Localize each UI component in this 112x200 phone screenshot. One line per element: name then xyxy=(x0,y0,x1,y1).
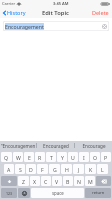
staticText: K xyxy=(89,166,93,173)
staticText: S xyxy=(19,166,22,173)
staticText: 3:45 AM xyxy=(53,1,69,6)
staticText: Delete xyxy=(92,9,109,16)
button[interactable]: 123 xyxy=(1,188,17,198)
button[interactable]: E xyxy=(24,152,34,162)
button[interactable]: O xyxy=(90,152,100,162)
button[interactable]: G xyxy=(49,164,60,174)
button[interactable]: Backspace xyxy=(96,176,111,186)
button[interactable]: space xyxy=(31,188,84,198)
staticText: M xyxy=(88,178,93,185)
button[interactable]: Delete xyxy=(91,8,110,17)
button[interactable]: J xyxy=(73,164,84,174)
staticText: space xyxy=(52,190,64,196)
button[interactable]: Encouragement xyxy=(3,21,109,31)
staticText: W xyxy=(16,154,21,161)
staticText: Z xyxy=(22,178,25,185)
button[interactable]: N xyxy=(74,176,84,186)
button[interactable]: U xyxy=(68,152,78,162)
staticText: Y xyxy=(61,154,64,161)
button[interactable]: R xyxy=(35,152,45,162)
button[interactable]: C xyxy=(41,176,51,186)
button[interactable]: Clear text xyxy=(102,24,107,29)
staticText: H xyxy=(65,166,69,173)
button[interactable]: "Encouragement" xyxy=(0,141,36,150)
staticText: C xyxy=(44,178,48,185)
button[interactable]: S xyxy=(15,164,25,174)
staticText: "Encouragement" xyxy=(0,143,36,149)
staticText: U xyxy=(71,154,75,161)
button[interactable]: B xyxy=(63,176,73,186)
staticText: 123 xyxy=(6,191,13,196)
staticText: E xyxy=(28,154,31,161)
staticText: I xyxy=(83,154,85,161)
staticText: Edit Topic xyxy=(42,9,70,17)
button[interactable]: Encouraged xyxy=(37,141,74,150)
staticText: X xyxy=(33,178,37,185)
staticText: J xyxy=(78,166,80,173)
staticText: Encouragement xyxy=(5,23,44,30)
staticText: Encourage xyxy=(82,143,106,149)
button[interactable]: A xyxy=(4,164,14,174)
staticText: A xyxy=(7,166,11,173)
button[interactable]: M xyxy=(85,176,95,186)
button[interactable]: return xyxy=(85,188,111,198)
staticText: O xyxy=(93,154,98,161)
button[interactable]: V xyxy=(52,176,62,186)
staticText: R xyxy=(38,154,42,161)
staticText: History xyxy=(7,9,26,16)
button[interactable]: T xyxy=(46,152,56,162)
button[interactable]: L xyxy=(97,164,108,174)
staticText: T xyxy=(50,154,53,161)
staticText: Encouraged xyxy=(43,143,69,149)
button[interactable]: X xyxy=(30,176,40,186)
button[interactable]: P xyxy=(101,152,111,162)
button[interactable]: Shift xyxy=(1,176,17,186)
staticText: D xyxy=(29,166,33,173)
button[interactable]: Y xyxy=(57,152,67,162)
button[interactable]: I xyxy=(79,152,89,162)
staticText: B xyxy=(66,178,70,185)
button[interactable]: H xyxy=(61,164,72,174)
staticText: N xyxy=(77,178,81,185)
staticText: L xyxy=(101,166,104,173)
button[interactable]: Encourage xyxy=(75,141,112,150)
button[interactable]: F xyxy=(37,164,48,174)
staticText: Q xyxy=(4,154,9,161)
button[interactable]: Z xyxy=(18,176,29,186)
button[interactable]: Emoji xyxy=(18,188,30,198)
button[interactable]: Q xyxy=(1,152,12,162)
staticText: return xyxy=(92,190,105,196)
staticText: Carrier xyxy=(2,1,16,6)
staticText: G xyxy=(53,166,57,173)
staticText: P xyxy=(104,154,108,161)
button[interactable]: D xyxy=(26,164,36,174)
staticText: F xyxy=(41,166,44,173)
button[interactable]: K xyxy=(85,164,96,174)
button[interactable]: History xyxy=(2,8,27,17)
button[interactable]: W xyxy=(13,152,23,162)
staticText: V xyxy=(55,178,59,185)
